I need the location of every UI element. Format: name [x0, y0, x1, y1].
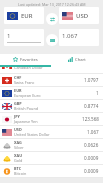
button[interactable]: EUR — [0, 87, 103, 100]
button[interactable]: XAU — [0, 152, 103, 165]
staticText: JPY — [14, 114, 20, 119]
staticText: 1 — [7, 32, 11, 40]
staticText: BTC — [14, 166, 22, 171]
staticText: 0.0009 — [84, 168, 99, 174]
staticText: Swiss Franc — [14, 80, 35, 85]
staticText: British Pound — [14, 106, 39, 111]
staticText: 1 — [96, 90, 99, 96]
staticText: 0.0626 — [84, 142, 99, 148]
staticText: Canadian Dollar — [14, 67, 43, 70]
staticText: USD — [14, 127, 22, 132]
button[interactable]: 1.067 — [59, 29, 99, 46]
staticText: CHF — [14, 75, 22, 80]
staticText: 1.067 — [62, 32, 78, 40]
staticText: European Euro — [14, 93, 41, 98]
button[interactable]: CAD — [0, 67, 103, 74]
staticText: Bitcoin — [14, 171, 27, 176]
staticText: EUR — [14, 88, 22, 93]
staticText: Gold — [14, 158, 23, 163]
staticText: Last updated: Mar 13, 2017 12:26:43 AM — [18, 2, 86, 7]
button[interactable]: USD — [59, 7, 99, 24]
staticText: EUR — [21, 12, 33, 20]
staticText: Japanese Yen — [14, 119, 38, 124]
staticText: 1.067 — [87, 129, 99, 135]
staticText: XAG — [14, 140, 22, 145]
button[interactable]: CHF — [0, 74, 103, 87]
button[interactable]: 1 — [4, 29, 44, 46]
button[interactable]: Favorites — [0, 54, 51, 65]
button[interactable]: EUR — [4, 7, 44, 24]
button[interactable]: XAG — [0, 139, 103, 152]
staticText: XAU — [14, 153, 23, 158]
button[interactable]: GBP — [0, 100, 103, 113]
staticText: GBP — [14, 101, 22, 106]
staticText: Silver — [14, 145, 24, 150]
button[interactable]: Swap currencies — [46, 13, 58, 25]
staticText: United States Dollar — [14, 132, 50, 137]
staticText: Favorites — [20, 57, 38, 63]
staticText: USD — [76, 12, 89, 20]
staticText: 0.0009 — [84, 155, 99, 161]
button[interactable]: USD — [0, 126, 103, 139]
staticText: 0.8774 — [84, 103, 99, 109]
button[interactable]: Chart — [51, 54, 103, 65]
button[interactable]: BTC — [0, 165, 103, 178]
staticText: 1.0797 — [84, 77, 99, 83]
button[interactable]: Show keyboard — [46, 34, 58, 46]
button[interactable]: JPY — [0, 113, 103, 126]
staticText: 123.568 — [82, 116, 99, 122]
staticText: Chart — [75, 57, 86, 63]
